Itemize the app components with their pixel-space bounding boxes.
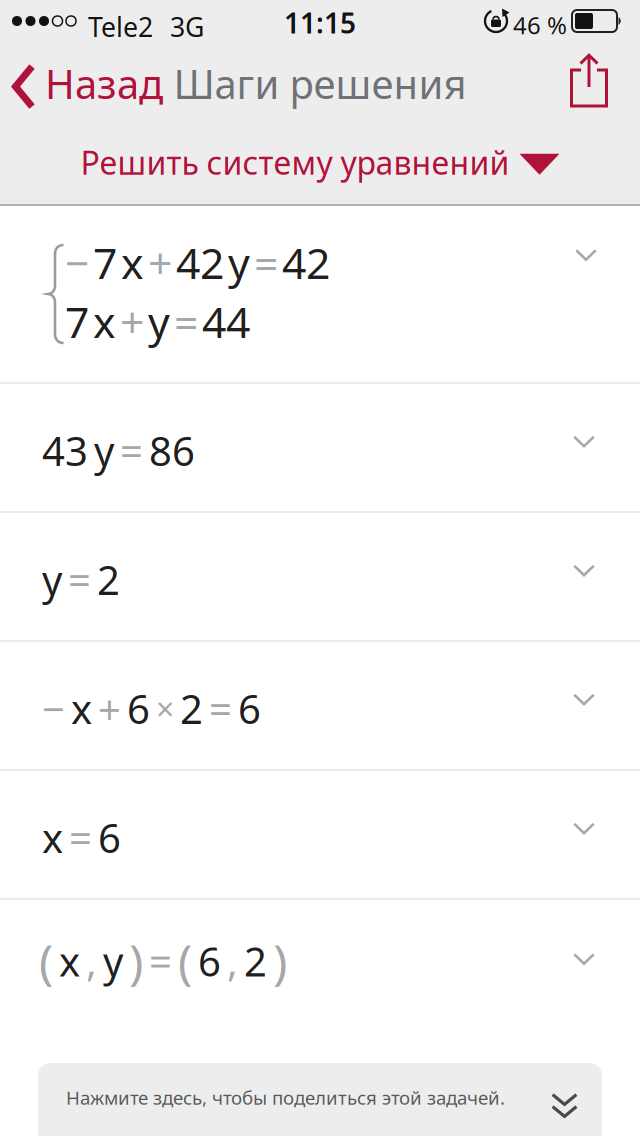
staticText: = — [149, 934, 172, 987]
button[interactable]: Назад — [0, 0, 151, 53]
staticText: 6 — [198, 934, 221, 987]
staticText: 2 — [97, 553, 120, 606]
staticText: y — [148, 293, 170, 350]
staticText: 44 — [202, 293, 250, 350]
staticText: 2 — [180, 682, 203, 735]
staticText: 11:15 — [284, 4, 356, 41]
staticText: + — [148, 234, 172, 291]
staticText: 42 — [282, 234, 330, 291]
staticText: , — [227, 934, 238, 987]
staticText: x — [93, 293, 116, 350]
button[interactable]: 43 — [0, 384, 640, 511]
staticText: = — [120, 424, 143, 477]
staticText: y — [42, 553, 62, 606]
staticText: 7 — [93, 234, 117, 291]
staticText: = — [209, 682, 232, 735]
staticText: = — [68, 553, 91, 606]
button[interactable]: Решить систему уравнений — [0, 0, 640, 42]
staticText: x — [59, 934, 80, 987]
staticText: 46 % — [513, 9, 567, 41]
staticText: 3G — [170, 9, 204, 44]
staticText: x — [121, 234, 144, 291]
button[interactable]: − — [0, 206, 640, 382]
staticText: − — [42, 682, 65, 735]
staticText: ( — [39, 929, 53, 993]
staticText: 6 — [98, 811, 121, 864]
staticText: 42 — [176, 234, 224, 291]
staticText: = — [69, 811, 92, 864]
staticText: ( — [178, 929, 192, 993]
staticText: x — [71, 682, 92, 735]
staticText: + — [98, 682, 121, 735]
staticText: ) — [273, 929, 287, 993]
staticText: × — [156, 687, 174, 730]
staticText: − — [65, 234, 89, 291]
button[interactable]: − — [0, 642, 640, 769]
button[interactable]: y — [0, 513, 640, 640]
staticText: y — [103, 934, 123, 987]
staticText: x — [42, 811, 63, 864]
button[interactable]: Поделиться — [0, 0, 38, 53]
staticText: y — [94, 424, 114, 477]
button[interactable]: Нажмите здесь, чтобы поделиться этой зад… — [38, 1063, 602, 1136]
staticText: Шаги решения — [173, 57, 466, 110]
staticText: ) — [129, 929, 143, 993]
staticText: 2 — [244, 934, 267, 987]
button[interactable]: x — [0, 771, 640, 898]
staticText: 7 — [65, 293, 89, 350]
staticText: + — [120, 293, 144, 350]
staticText: Решить систему уравнений — [80, 141, 509, 183]
staticText: 86 — [149, 424, 195, 477]
staticText: , — [86, 934, 97, 987]
button[interactable]: ( — [0, 900, 640, 1030]
staticText: = — [254, 234, 278, 291]
staticText: 6 — [127, 682, 150, 735]
staticText: Назад — [45, 57, 163, 110]
staticText: = — [174, 293, 198, 350]
staticText: Tele2 — [88, 9, 153, 44]
staticText: Нажмите здесь, чтобы поделиться этой зад… — [66, 1085, 505, 1110]
staticText: 6 — [238, 682, 261, 735]
staticText: 43 — [42, 424, 88, 477]
staticText: y — [228, 234, 250, 291]
